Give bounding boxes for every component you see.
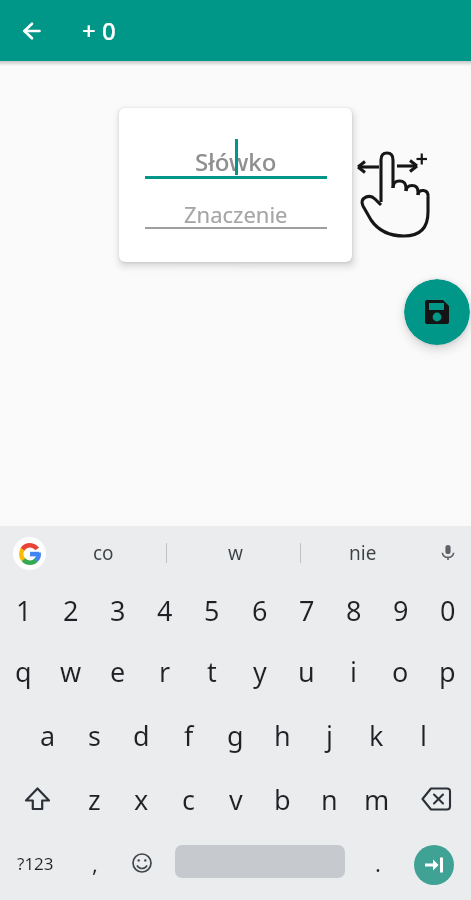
staticText: . (375, 848, 381, 878)
button[interactable]: 0 (424, 578, 471, 642)
button[interactable]: e (94, 639, 141, 703)
staticText: z (88, 781, 101, 818)
staticText: 3 (110, 592, 126, 629)
button[interactable]: v (212, 767, 259, 831)
staticText: ?123 (17, 852, 54, 875)
staticText: 5 (204, 592, 220, 629)
staticText: k (369, 717, 384, 754)
staticText: 9 (393, 592, 409, 629)
button[interactable] (401, 767, 471, 831)
staticText: n (321, 781, 338, 818)
staticText: 6 (252, 592, 268, 629)
staticText: 4 (157, 592, 173, 629)
button[interactable]: 9 (377, 578, 424, 642)
button[interactable]: b (259, 767, 306, 831)
button[interactable]: r (141, 639, 188, 703)
staticText: p (439, 653, 456, 690)
button[interactable]: 1 (0, 578, 47, 642)
button[interactable]: 8 (330, 578, 377, 642)
button[interactable]: x (118, 767, 165, 831)
staticText: 7 (299, 592, 315, 629)
staticText: o (392, 653, 409, 690)
button[interactable]: f (165, 703, 212, 767)
button[interactable] (404, 279, 470, 345)
staticText: t (207, 653, 217, 690)
button[interactable] (414, 845, 454, 885)
button[interactable]: p (424, 639, 471, 703)
button[interactable]: g (212, 703, 259, 767)
staticText: b (274, 781, 291, 818)
button[interactable] (8, 7, 56, 55)
button[interactable]: ?123 (4, 831, 66, 895)
button[interactable]: w (47, 639, 94, 703)
staticText: c (182, 781, 195, 818)
staticText: 0 (440, 592, 456, 629)
staticText: r (159, 653, 171, 690)
button[interactable]: q (0, 639, 47, 703)
staticText: i (350, 653, 357, 690)
button[interactable]: . (355, 831, 400, 895)
button[interactable]: 4 (141, 578, 188, 642)
button[interactable]: s (71, 703, 118, 767)
staticText: q (15, 653, 32, 690)
staticText: d (133, 717, 150, 754)
staticText: m (364, 781, 390, 818)
button[interactable] (0, 767, 70, 831)
button[interactable] (118, 831, 165, 895)
button[interactable]: 3 (94, 578, 141, 642)
button[interactable]: nie (310, 526, 415, 580)
staticText: a (40, 717, 56, 754)
button[interactable]: 2 (47, 578, 94, 642)
staticText: 8 (346, 592, 362, 629)
staticText: nie (349, 540, 377, 566)
staticText: e (110, 653, 126, 690)
staticText: 1 (16, 592, 32, 629)
staticText: l (420, 717, 427, 754)
staticText: x (134, 781, 149, 818)
staticText: g (227, 717, 244, 754)
button[interactable]: j (306, 703, 353, 767)
staticText: y (253, 653, 267, 690)
button[interactable]: a (24, 703, 71, 767)
button[interactable]: c (165, 767, 212, 831)
button[interactable]: y (236, 639, 283, 703)
button[interactable]: 5 (188, 578, 235, 642)
staticText: 2 (63, 592, 79, 629)
button[interactable]: d (118, 703, 165, 767)
button[interactable]: k (353, 703, 400, 767)
staticText: u (298, 653, 315, 690)
button[interactable]: l (400, 703, 447, 767)
button[interactable]: i (330, 639, 377, 703)
button[interactable]: n (306, 767, 353, 831)
button[interactable]: w (180, 526, 290, 580)
button[interactable]: z (71, 767, 118, 831)
staticText: w (60, 653, 82, 690)
button[interactable]: t (188, 639, 235, 703)
button[interactable]: h (259, 703, 306, 767)
button[interactable]: 7 (283, 578, 330, 642)
button[interactable]: u (283, 639, 330, 703)
staticText: + 0 (82, 14, 116, 47)
button[interactable]: o (377, 639, 424, 703)
staticText: w (228, 540, 243, 566)
staticText: Słówko (195, 145, 277, 178)
button[interactable]: m (353, 767, 400, 831)
staticText: h (274, 717, 291, 754)
button[interactable] (13, 537, 46, 570)
staticText: co (93, 540, 114, 566)
button[interactable]: co (53, 526, 153, 580)
staticText: , (92, 848, 98, 878)
staticText: f (184, 717, 194, 754)
staticText: v (229, 781, 243, 818)
button[interactable]: , (71, 831, 118, 895)
staticText: j (326, 717, 333, 754)
staticText: Znaczenie (184, 199, 288, 229)
button[interactable]: 6 (236, 578, 283, 642)
staticText: s (88, 717, 101, 754)
